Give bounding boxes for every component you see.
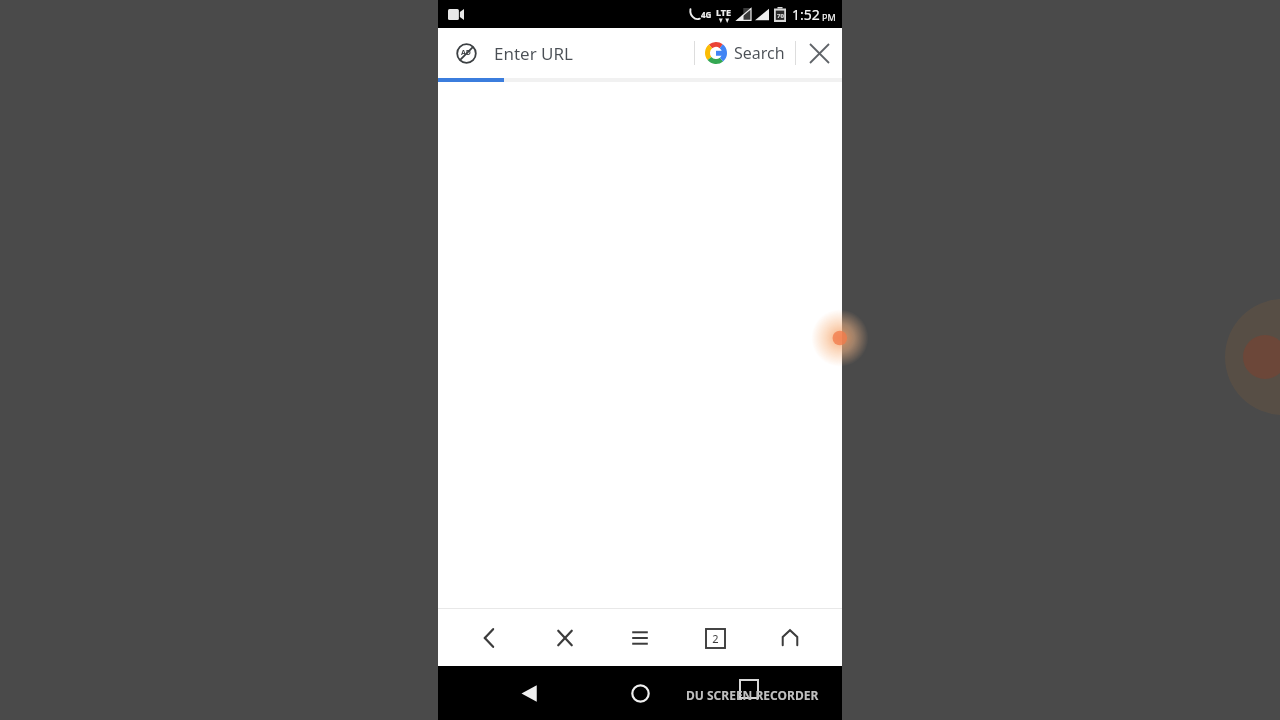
- staticText: 1:52: [792, 5, 820, 24]
- staticText: Enter URL: [494, 42, 574, 65]
- button[interactable]: Home: [617, 670, 663, 716]
- staticText: Search: [734, 42, 785, 64]
- button[interactable]: Tabs: [692, 615, 738, 661]
- staticText: PM: [822, 11, 836, 23]
- button[interactable]: Back: [506, 670, 552, 716]
- button[interactable]: Enter URL: [482, 28, 694, 78]
- button[interactable]: Search: [695, 28, 795, 78]
- button[interactable]: Recents: [729, 669, 769, 709]
- staticText: 2: [712, 631, 719, 646]
- button[interactable]: Menu: [617, 615, 663, 661]
- staticText: LTE: [716, 6, 732, 18]
- staticText: 70: [777, 12, 784, 20]
- button[interactable]: Home: [767, 615, 813, 661]
- staticText: 4G: [701, 9, 712, 20]
- button[interactable]: Ad block: [450, 37, 482, 69]
- staticText: DU SCREEN RECORDER: [686, 687, 819, 703]
- button[interactable]: Stop: [542, 615, 588, 661]
- button[interactable]: Close: [796, 30, 842, 76]
- button[interactable]: Back: [467, 615, 513, 661]
- staticText: AD: [461, 48, 471, 58]
